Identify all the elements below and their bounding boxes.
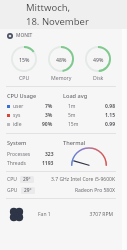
staticText: 323 (45, 151, 54, 158)
staticText: CPU (7, 176, 17, 183)
staticText: MONIT (16, 32, 33, 39)
staticText: GPU (7, 187, 18, 194)
staticText: 5m (68, 112, 105, 119)
button[interactable]: CPU (7, 176, 115, 183)
button[interactable]: 49% (85, 46, 111, 81)
staticText: 48% (56, 56, 67, 63)
staticText: Memory (51, 74, 72, 81)
staticText: Threads (7, 160, 42, 167)
staticText: 49% (93, 56, 104, 63)
button[interactable]: Mittwoch, (0, 0, 127, 29)
staticText: sys (13, 112, 45, 119)
staticText: 29° (24, 187, 32, 194)
staticText: 1m (68, 103, 105, 110)
staticText: CPU (19, 74, 30, 81)
staticText: 15m (68, 121, 105, 128)
staticText: 3% (45, 112, 53, 119)
staticText: Mittwoch, (26, 1, 71, 14)
staticText: Disk (93, 74, 104, 81)
staticText: 1.15 (105, 112, 115, 119)
staticText: CPU Usage (7, 92, 37, 100)
staticText: Processes (7, 151, 45, 158)
button[interactable]: Fan (0, 199, 122, 229)
staticText: Load avg (63, 92, 88, 100)
staticText: System (7, 139, 27, 147)
other: Thermal gauge (71, 148, 107, 166)
staticText: 18. November (26, 15, 89, 28)
button[interactable]: 48% (48, 46, 74, 81)
button[interactable]: 15% (11, 46, 37, 81)
other: Monit app icon (7, 33, 13, 39)
staticText: 7% (45, 103, 53, 110)
staticText: 1193 (42, 160, 54, 167)
staticText: Fan 1 (38, 211, 51, 218)
staticText: 15% (19, 56, 30, 63)
staticText: 0.99 (105, 121, 115, 128)
staticText: 29° (23, 176, 31, 183)
staticText: Thermal (63, 139, 86, 147)
staticText: Radeon Pro 580X (39, 187, 115, 194)
staticText: 3.7 GHz Intel Core i5-9600K (38, 176, 115, 183)
staticText: 0.98 (105, 103, 115, 110)
staticText: user (13, 103, 45, 110)
other: Fan (9, 207, 24, 222)
staticText: 90% (42, 121, 53, 128)
button[interactable]: Monit app icon (0, 29, 122, 42)
staticText: idle (13, 121, 42, 128)
staticText: 3707 RPM (51, 211, 113, 218)
button[interactable]: GPU (7, 187, 115, 194)
